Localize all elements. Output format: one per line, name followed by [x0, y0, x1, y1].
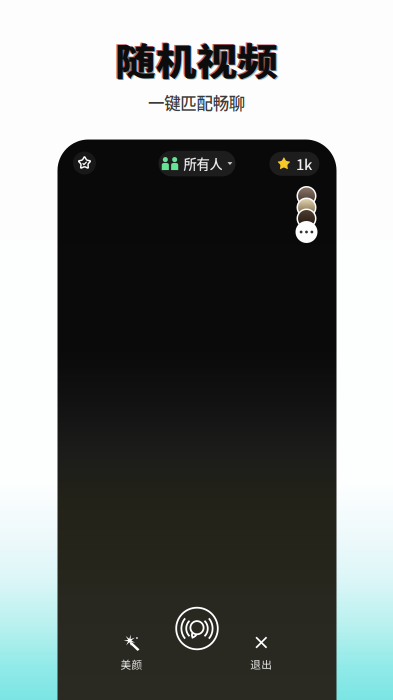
button[interactable]: 收藏	[73, 151, 96, 174]
button[interactable]: 退出	[235, 633, 287, 672]
staticText: 美颜	[120, 656, 142, 672]
staticText: 一键匹配畅聊	[145, 90, 247, 115]
button[interactable]: 所有人	[158, 151, 235, 176]
button[interactable]: 美颜	[105, 633, 157, 672]
staticText: 退出	[250, 656, 272, 672]
button[interactable]: 1k	[269, 152, 319, 176]
staticText: 所有人	[183, 154, 222, 173]
staticText: 1k	[296, 153, 312, 174]
staticText: 随机视频	[99, 32, 291, 101]
button[interactable]: 开始匹配	[175, 606, 219, 650]
staticText: 随机视频	[100, 33, 292, 102]
staticText: 随机视频	[102, 34, 294, 103]
button[interactable]: 更多	[295, 221, 317, 243]
